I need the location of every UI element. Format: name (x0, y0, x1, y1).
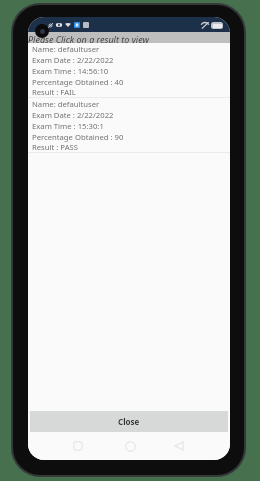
staticText: Exam Date : 2/22/2022 (32, 55, 114, 65)
staticText: Exam Time : 15:30:1 (32, 121, 104, 131)
staticText: Exam Time : 14:56:10 (32, 66, 109, 76)
staticText: Please Click on a result to view (28, 33, 149, 44)
button[interactable]: Name: defaultuser (28, 43, 230, 97)
staticText: Result : PASS (32, 142, 78, 152)
button[interactable]: Back (168, 435, 190, 457)
button[interactable]: Home (119, 435, 141, 457)
staticText: Name: defaultuser (32, 44, 100, 54)
button[interactable]: Close (30, 411, 228, 432)
button[interactable]: Please Click on a result to view (28, 32, 230, 43)
button[interactable]: Name: defaultuser (28, 98, 230, 152)
staticText: Name: defaultuser (32, 99, 100, 109)
button[interactable]: Recents (67, 435, 89, 457)
staticText: Percentage Obtained : 40 (32, 77, 124, 87)
staticText: Exam Date : 2/22/2022 (32, 110, 114, 120)
staticText: Result : FAIL (32, 87, 76, 97)
staticText: Percentage Obtained : 90 (32, 132, 124, 142)
staticText: Close (118, 416, 140, 427)
